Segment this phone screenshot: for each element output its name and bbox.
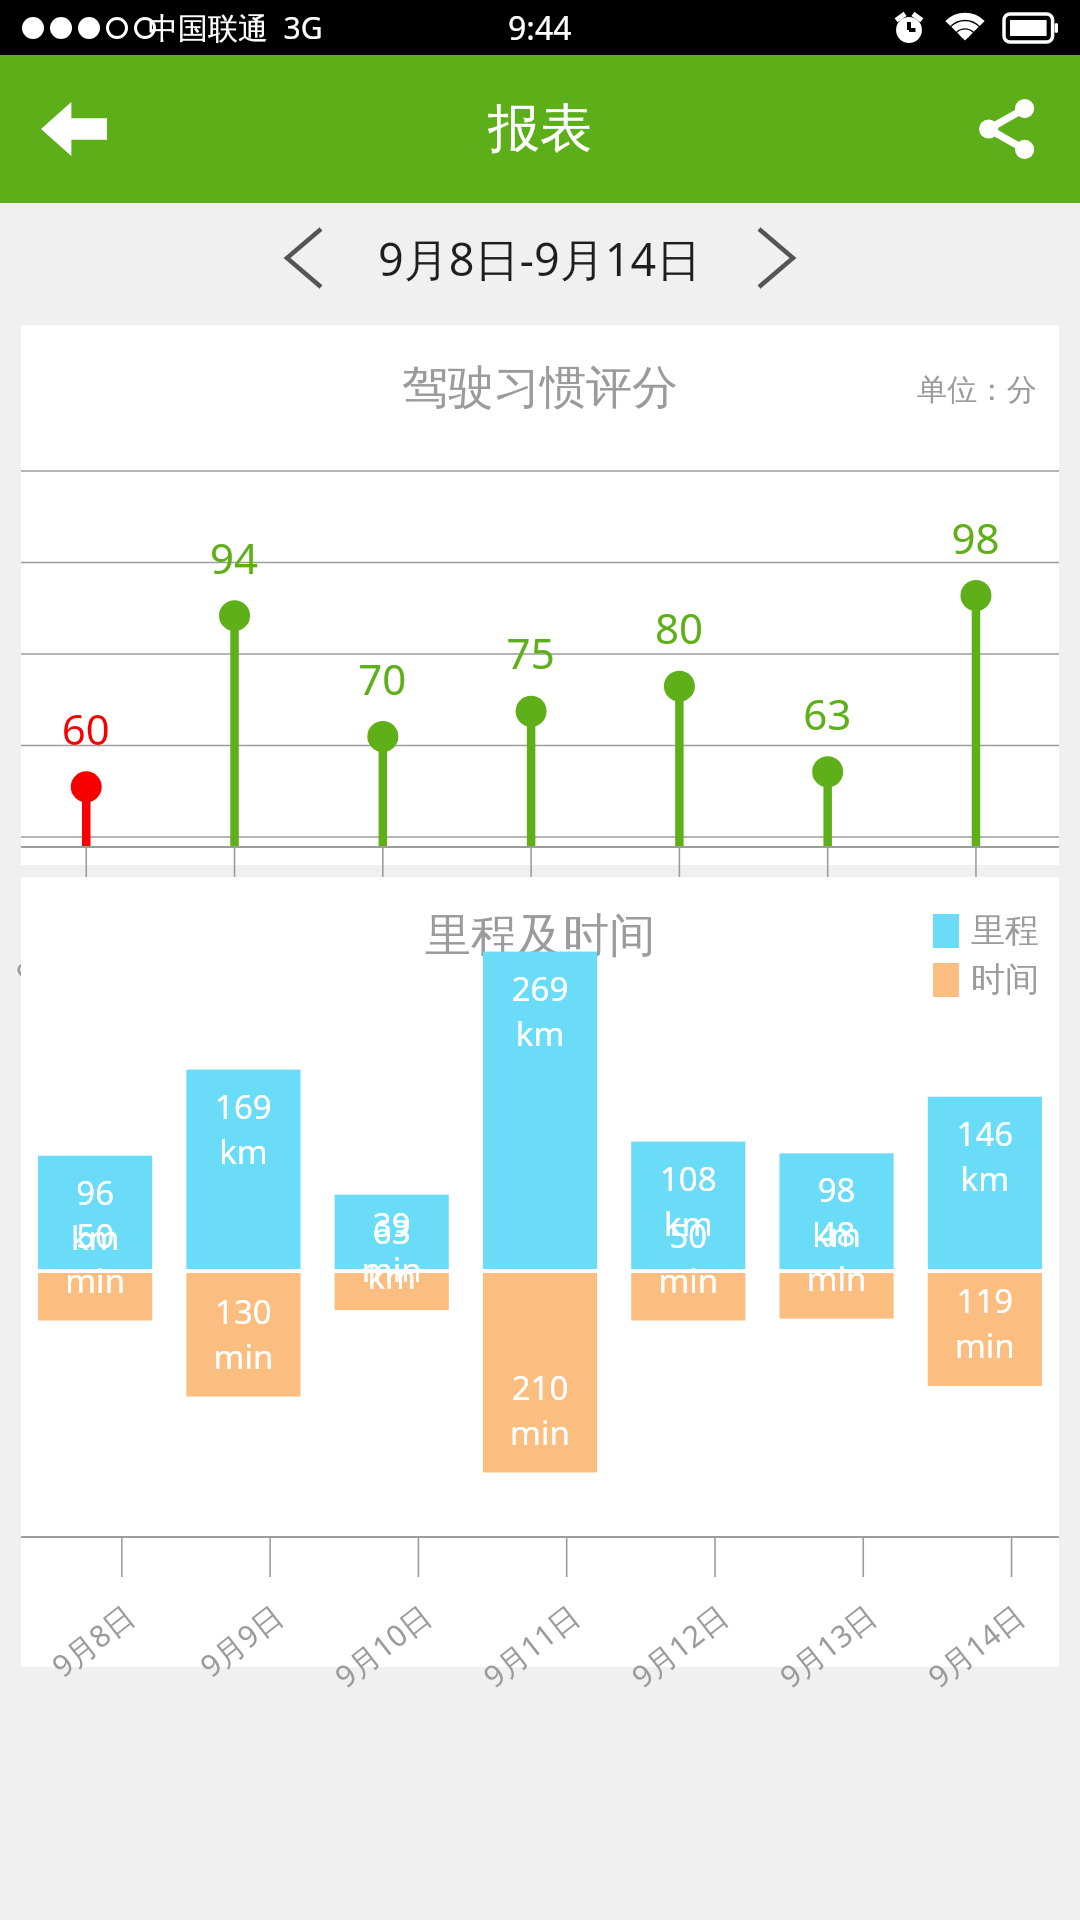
staticText: 里程 [971,909,1039,952]
staticText: 中国联通 3G [148,7,323,48]
button[interactable]: Share [932,55,1080,203]
staticText: 时间 [971,958,1039,1001]
staticText: 单位：分 [917,371,1037,409]
staticText: 里程及时间 [425,907,655,965]
button[interactable]: Next week [728,210,824,306]
button[interactable]: Previous week [256,210,352,306]
staticText: 9:44 [508,6,572,50]
staticText: 9月8日-9月14日 [378,228,702,289]
staticText: 报表 [488,96,592,162]
staticText: 驾驶习惯评分 [402,359,678,417]
button[interactable]: Back [0,55,148,203]
